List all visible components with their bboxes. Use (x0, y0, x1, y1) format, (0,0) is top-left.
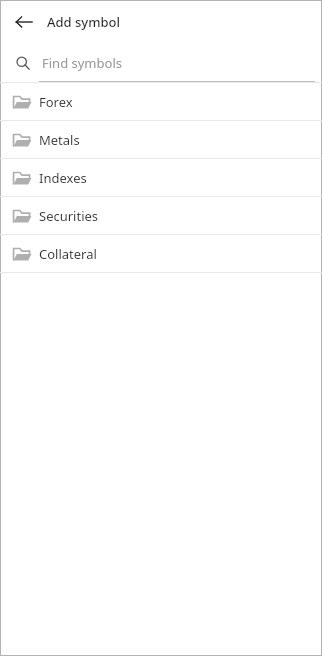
button[interactable]: Find symbols (0, 44, 322, 82)
button[interactable]: Back (8, 6, 40, 38)
staticText: Add symbol (47, 13, 121, 31)
staticText: Collateral (39, 245, 97, 263)
staticText: Find symbols (42, 54, 122, 72)
button[interactable]: Collateral (0, 235, 322, 272)
staticText: Forex (39, 93, 73, 111)
button[interactable]: Securities (0, 197, 322, 234)
button[interactable]: Metals (0, 121, 322, 158)
staticText: Securities (39, 207, 99, 225)
staticText: Indexes (39, 169, 87, 187)
staticText: Metals (39, 131, 80, 149)
button[interactable]: Indexes (0, 159, 322, 196)
button[interactable]: Forex (0, 83, 322, 120)
